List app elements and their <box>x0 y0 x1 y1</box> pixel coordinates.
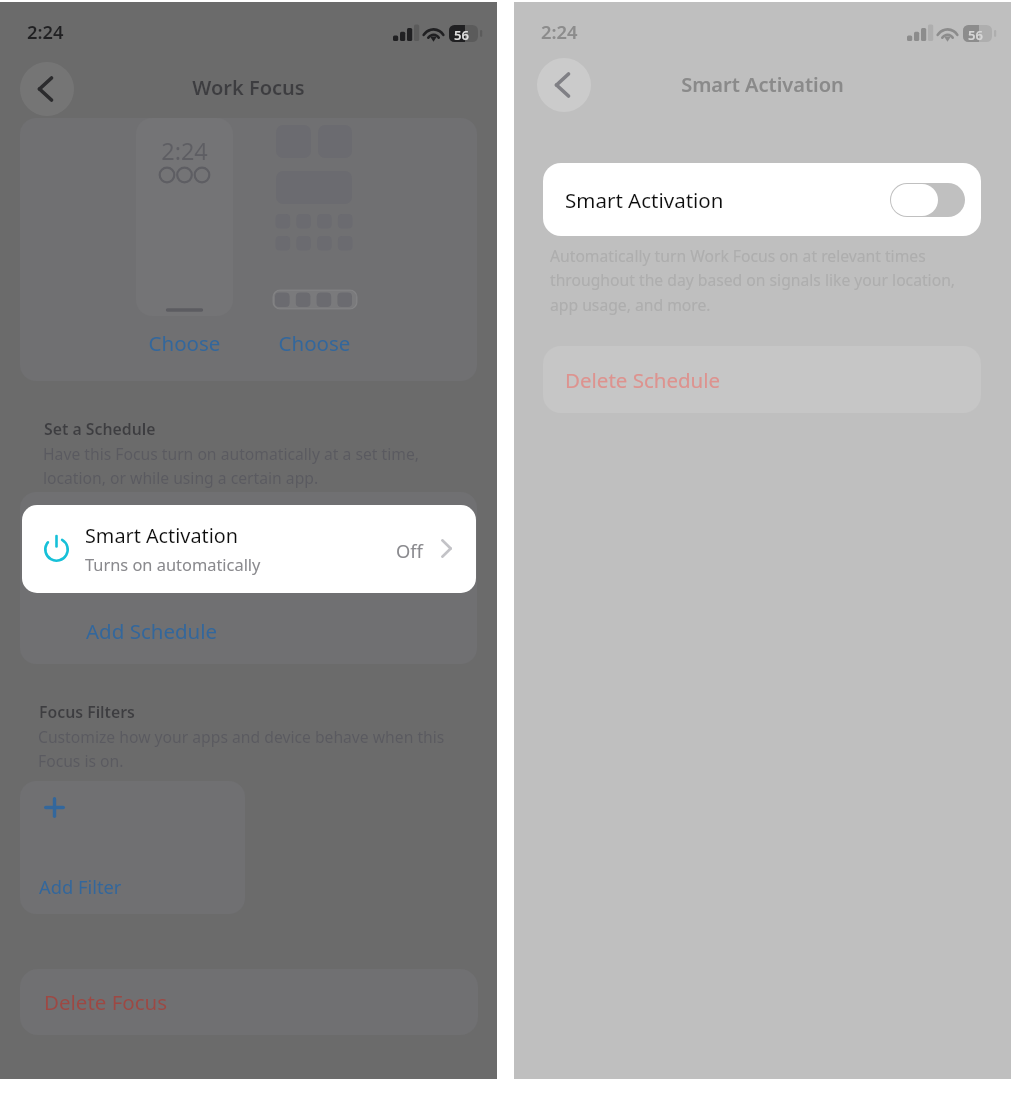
staticText: Work Focus <box>0 74 497 101</box>
button[interactable]: Smart Activation <box>22 505 476 593</box>
staticText: 56 <box>454 26 469 44</box>
button[interactable]: Delete Schedule <box>543 346 981 413</box>
staticText: Smart Activation <box>514 71 1011 98</box>
staticText: Delete Schedule <box>565 366 721 394</box>
button[interactable]: Back <box>20 62 74 116</box>
button[interactable]: Smart Activation <box>543 163 981 236</box>
staticText: 2:24 <box>27 19 64 44</box>
staticText: Off <box>396 538 423 563</box>
staticText: Add Filter <box>39 874 122 899</box>
button[interactable]: Choose lock screen <box>136 118 233 316</box>
staticText: 2:24 <box>541 19 578 44</box>
staticText: 56 <box>968 26 983 44</box>
staticText: Set a Schedule <box>44 418 156 440</box>
staticText: Choose <box>266 329 363 357</box>
staticText: Customize how your apps and device behav… <box>38 726 445 771</box>
button[interactable]: Back <box>537 58 591 112</box>
staticText: Have this Focus turn on automatically at… <box>43 443 419 488</box>
staticText: 2:24 <box>136 135 233 167</box>
staticText: Automatically turn Work Focus on at rele… <box>550 245 956 316</box>
staticText: Smart Activation <box>85 522 238 549</box>
button[interactable]: Choose home screen <box>265 118 367 316</box>
button[interactable]: Add Schedule <box>86 617 218 645</box>
staticText: Turns on automatically <box>85 553 261 575</box>
staticText: Choose <box>136 329 233 357</box>
staticText: Delete Focus <box>44 988 168 1016</box>
staticText: Smart Activation <box>565 186 724 214</box>
staticText: Focus Filters <box>39 701 135 723</box>
button[interactable]: Add Filter <box>20 781 245 914</box>
button[interactable]: Delete Focus <box>20 969 478 1035</box>
button[interactable]: Smart Activation toggle <box>890 183 965 217</box>
